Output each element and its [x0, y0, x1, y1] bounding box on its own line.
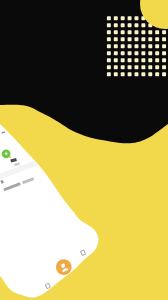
- other: App landing screen: [0, 0, 168, 300]
- button[interactable]: [0, 0, 168, 300]
